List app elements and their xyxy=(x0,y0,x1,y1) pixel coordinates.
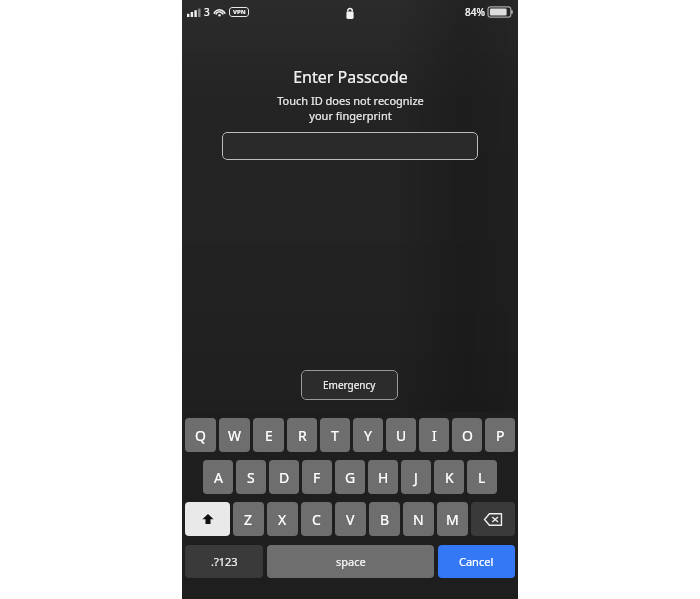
staticText: Cancel xyxy=(459,554,494,569)
button[interactable]: Emergency xyxy=(301,370,398,400)
staticText: 3 xyxy=(204,5,210,19)
staticText: Enter Passcode xyxy=(293,66,408,88)
staticText: .?123 xyxy=(211,554,238,569)
button[interactable]: Y xyxy=(353,418,383,452)
button[interactable]: R xyxy=(287,418,317,452)
staticText: VPN xyxy=(233,8,246,16)
button[interactable]: N xyxy=(403,502,434,536)
button[interactable]: S xyxy=(236,460,266,494)
button[interactable]: M xyxy=(437,502,468,536)
staticText: H xyxy=(378,468,389,487)
staticText: P xyxy=(496,426,505,445)
staticText: A xyxy=(214,468,223,487)
staticText: J xyxy=(414,468,418,487)
staticText: Touch ID does not recognize xyxy=(277,93,424,108)
button[interactable]: T xyxy=(320,418,350,452)
staticText: G xyxy=(345,468,356,487)
staticText: S xyxy=(247,468,255,487)
button[interactable]: Backspace xyxy=(471,502,515,536)
staticText: M xyxy=(446,510,459,529)
staticText: B xyxy=(380,510,390,529)
button[interactable]: space xyxy=(267,545,434,578)
staticText: N xyxy=(413,510,424,529)
button[interactable]: K xyxy=(434,460,464,494)
button[interactable]: I xyxy=(419,418,449,452)
staticText: Q xyxy=(195,426,206,445)
button[interactable]: L xyxy=(467,460,497,494)
button[interactable]: H xyxy=(368,460,398,494)
button[interactable]: B xyxy=(369,502,400,536)
staticText: 84% xyxy=(465,5,485,19)
staticText: X xyxy=(278,510,287,529)
button[interactable]: F xyxy=(302,460,332,494)
staticText: Y xyxy=(364,426,372,445)
button[interactable]: O xyxy=(452,418,482,452)
staticText: T xyxy=(331,426,339,445)
button[interactable]: G xyxy=(335,460,365,494)
button[interactable]: E xyxy=(253,418,284,452)
staticText: L xyxy=(478,468,486,487)
staticText: K xyxy=(445,468,454,487)
button[interactable]: Cancel xyxy=(438,545,515,578)
staticText: Emergency xyxy=(323,378,376,392)
staticText: F xyxy=(313,468,321,487)
button[interactable]: Q xyxy=(185,418,216,452)
button[interactable] xyxy=(222,132,478,160)
button[interactable]: J xyxy=(401,460,431,494)
staticText: C xyxy=(312,510,321,529)
button[interactable]: W xyxy=(219,418,250,452)
button[interactable]: D xyxy=(269,460,299,494)
button[interactable]: C xyxy=(301,502,332,536)
button[interactable]: P xyxy=(485,418,515,452)
staticText: V xyxy=(346,510,355,529)
staticText: space xyxy=(336,554,366,569)
button[interactable]: X xyxy=(267,502,298,536)
staticText: E xyxy=(265,426,273,445)
button[interactable]: Z xyxy=(233,502,264,536)
staticText: D xyxy=(279,468,290,487)
button[interactable]: .?123 xyxy=(185,545,263,578)
staticText: Z xyxy=(244,510,253,529)
staticText: W xyxy=(228,426,242,445)
staticText: U xyxy=(396,426,407,445)
button[interactable]: Shift xyxy=(185,502,230,536)
staticText: I xyxy=(432,426,437,445)
staticText: O xyxy=(462,426,473,445)
staticText: your fingerprint xyxy=(309,108,392,123)
button[interactable]: V xyxy=(335,502,366,536)
button[interactable]: A xyxy=(203,460,233,494)
button[interactable]: U xyxy=(386,418,416,452)
staticText: R xyxy=(298,426,307,445)
